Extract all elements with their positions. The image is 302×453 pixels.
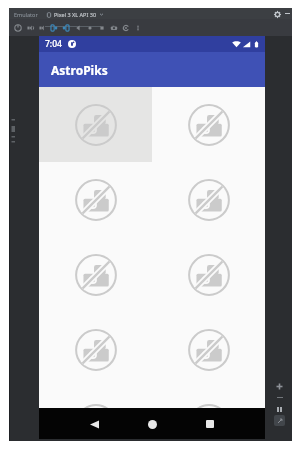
button[interactable] — [39, 237, 152, 312]
button[interactable]: Resize — [274, 415, 285, 426]
button[interactable]: Back — [72, 22, 84, 34]
button[interactable]: Pixel 3 XL API 30 — [46, 10, 104, 19]
button[interactable]: Zoom out — [274, 392, 285, 403]
button[interactable]: Power — [12, 22, 24, 34]
button[interactable]: More — [132, 22, 144, 34]
button[interactable] — [152, 312, 265, 387]
button[interactable]: Back — [83, 413, 105, 435]
button[interactable]: Pause — [273, 403, 285, 415]
button[interactable]: Screenshot — [108, 22, 120, 34]
button[interactable]: Overview — [96, 22, 108, 34]
button[interactable] — [39, 312, 152, 387]
staticText: 7:04 — [45, 38, 62, 50]
button[interactable]: Minimize — [283, 9, 292, 18]
staticText: AstroPiks — [51, 62, 108, 78]
button[interactable] — [39, 387, 152, 408]
button[interactable]: Volume down — [36, 22, 48, 34]
button[interactable]: Volume up — [24, 22, 36, 34]
button[interactable] — [152, 237, 265, 312]
button[interactable]: Recents — [199, 413, 221, 435]
button[interactable]: Rotate right — [60, 22, 72, 34]
button[interactable] — [152, 162, 265, 237]
button[interactable] — [39, 162, 152, 237]
button[interactable] — [39, 87, 152, 162]
staticText: Emulator — [14, 11, 38, 18]
button[interactable]: Rotate left — [48, 22, 60, 34]
button[interactable]: Home — [84, 22, 96, 34]
button[interactable]: Zoom in — [273, 380, 285, 392]
button[interactable] — [152, 87, 265, 162]
button[interactable]: Home — [141, 413, 163, 435]
staticText: Pixel 3 XL API 30 — [54, 11, 97, 18]
button[interactable]: Record — [120, 22, 132, 34]
button[interactable]: Emulator settings — [272, 9, 282, 19]
button[interactable] — [152, 387, 265, 408]
